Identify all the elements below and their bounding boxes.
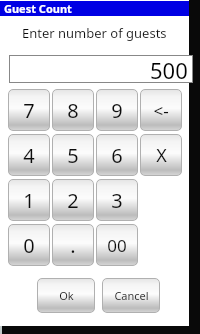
- button[interactable]: 9: [96, 89, 138, 131]
- staticText: 00: [107, 234, 127, 257]
- staticText: 6: [111, 142, 123, 169]
- button[interactable]: Ok: [37, 278, 95, 313]
- button[interactable]: Decimal point: [52, 224, 94, 266]
- staticText: 1: [23, 187, 35, 214]
- button[interactable]: 3: [96, 179, 138, 221]
- staticText: 500: [150, 55, 188, 83]
- staticText: 4: [23, 142, 35, 169]
- button[interactable]: 5: [52, 134, 94, 176]
- button[interactable]: Cancel: [102, 278, 160, 313]
- button[interactable]: 4: [8, 134, 50, 176]
- button[interactable]: 7: [8, 89, 50, 131]
- button[interactable]: 500: [9, 55, 193, 83]
- button[interactable]: 2: [52, 179, 94, 221]
- staticText: 7: [23, 97, 35, 124]
- staticText: 5: [67, 142, 79, 169]
- staticText: 0: [23, 232, 35, 259]
- staticText: Ok: [59, 288, 74, 303]
- staticText: Enter number of guests: [22, 24, 167, 42]
- button[interactable]: 1: [8, 179, 50, 221]
- button[interactable]: 0: [8, 224, 50, 266]
- staticText: 2: [67, 187, 79, 214]
- staticText: Guest Count: [4, 1, 72, 16]
- button[interactable]: Backspace: [140, 89, 182, 131]
- button[interactable]: 00: [96, 224, 138, 266]
- staticText: 3: [111, 187, 123, 214]
- staticText: X: [156, 143, 167, 168]
- button[interactable]: Clear: [140, 134, 182, 176]
- button[interactable]: 6: [96, 134, 138, 176]
- staticText: Cancel: [114, 288, 149, 303]
- staticText: .: [70, 232, 76, 259]
- button[interactable]: 8: [52, 89, 94, 131]
- staticText: 9: [111, 97, 123, 124]
- staticText: 8: [67, 97, 79, 124]
- staticText: <-: [153, 99, 169, 122]
